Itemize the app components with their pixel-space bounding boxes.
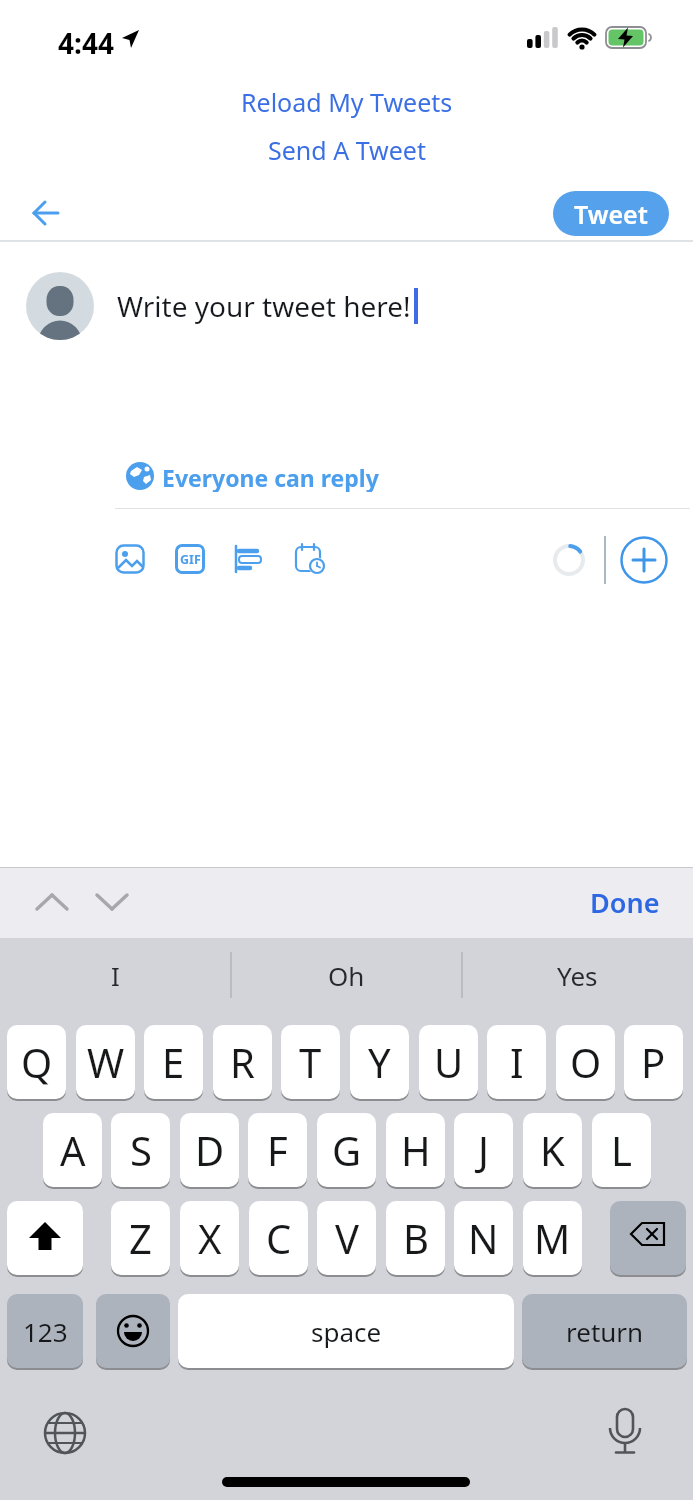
button[interactable]: P	[624, 1025, 683, 1099]
staticText: Tweet	[574, 197, 648, 231]
staticText: M	[534, 1211, 571, 1265]
button[interactable]: Y	[350, 1025, 409, 1099]
staticText: O	[570, 1035, 602, 1089]
button[interactable]	[294, 543, 326, 575]
staticText: U	[434, 1035, 464, 1089]
button[interactable]: K	[523, 1113, 582, 1187]
button[interactable]: A	[43, 1113, 102, 1187]
button[interactable]: Q	[7, 1025, 66, 1099]
button[interactable]: T	[281, 1025, 340, 1099]
staticText: return	[566, 1314, 644, 1349]
button[interactable]: D	[180, 1113, 239, 1187]
staticText: X	[198, 1211, 222, 1265]
staticText: V	[335, 1211, 359, 1265]
button[interactable]	[94, 885, 130, 921]
staticText: T	[299, 1035, 322, 1089]
button[interactable]: U	[419, 1025, 478, 1099]
button[interactable]	[610, 1201, 686, 1275]
button[interactable]: return	[522, 1294, 687, 1368]
staticText: A	[60, 1123, 86, 1177]
staticText: GIF	[180, 551, 201, 568]
button[interactable]: Tweet	[553, 191, 669, 236]
staticText: J	[478, 1123, 489, 1177]
button[interactable]: E	[144, 1025, 203, 1099]
staticText: H	[401, 1123, 431, 1177]
staticText: Write your tweet here!	[117, 287, 411, 325]
button[interactable]: C	[249, 1201, 308, 1275]
staticText: 4:44	[58, 24, 114, 62]
staticText: L	[611, 1123, 632, 1177]
staticText: E	[162, 1035, 185, 1089]
button[interactable]: V	[317, 1201, 376, 1275]
button[interactable]: Yes	[462, 950, 693, 1000]
staticText: Everyone can reply	[162, 462, 379, 492]
button[interactable]: F	[248, 1113, 307, 1187]
button[interactable]: X	[180, 1201, 239, 1275]
button[interactable]: R	[213, 1025, 272, 1099]
button[interactable]: I	[487, 1025, 546, 1099]
staticText: S	[130, 1123, 152, 1177]
button[interactable]: S	[111, 1113, 170, 1187]
button[interactable]: L	[592, 1113, 651, 1187]
staticText: K	[540, 1123, 565, 1177]
staticText: Oh	[328, 958, 365, 993]
button[interactable]	[620, 536, 668, 584]
staticText: I	[510, 1035, 524, 1089]
staticText: I	[111, 958, 120, 993]
button[interactable]: space	[178, 1294, 514, 1368]
button[interactable]: H	[386, 1113, 445, 1187]
button[interactable]	[34, 885, 70, 921]
button[interactable]: N	[454, 1201, 513, 1275]
button[interactable]: J	[454, 1113, 513, 1187]
staticText: Q	[21, 1035, 53, 1089]
staticText: W	[87, 1035, 125, 1089]
button[interactable]: M	[523, 1201, 582, 1275]
button[interactable]	[96, 1294, 170, 1368]
button[interactable]: GIF	[175, 544, 205, 574]
staticText: C	[266, 1211, 292, 1265]
button[interactable]: O	[556, 1025, 615, 1099]
button[interactable]: Reload My Tweets	[241, 85, 453, 119]
staticText: Yes	[557, 958, 598, 993]
staticText: B	[403, 1211, 429, 1265]
button[interactable]	[115, 544, 145, 574]
button[interactable]	[28, 194, 66, 232]
button[interactable]: B	[386, 1201, 445, 1275]
staticText: G	[332, 1123, 362, 1177]
staticText: 123	[23, 1314, 68, 1349]
staticText: space	[311, 1314, 382, 1349]
staticText: Done	[590, 884, 660, 921]
staticText: R	[230, 1035, 255, 1089]
staticText: F	[267, 1123, 288, 1177]
button[interactable]: G	[317, 1113, 376, 1187]
button[interactable]: W	[76, 1025, 135, 1099]
button[interactable]: Send A Tweet	[268, 133, 426, 167]
staticText: Reload My Tweets	[241, 85, 453, 119]
button[interactable]: Oh	[231, 950, 462, 1000]
staticText: Y	[368, 1035, 391, 1089]
button[interactable]: 123	[7, 1294, 83, 1368]
staticText: N	[468, 1211, 499, 1265]
staticText: D	[195, 1123, 225, 1177]
button[interactable]: Everyone can reply	[126, 462, 343, 492]
staticText: Z	[129, 1211, 152, 1265]
staticText: Send A Tweet	[268, 133, 426, 167]
staticText: P	[641, 1035, 666, 1089]
button[interactable]	[7, 1201, 83, 1275]
button[interactable]: Z	[111, 1201, 170, 1275]
button[interactable]: Done	[590, 884, 660, 921]
button[interactable]: I	[0, 950, 231, 1000]
button[interactable]	[233, 544, 263, 574]
